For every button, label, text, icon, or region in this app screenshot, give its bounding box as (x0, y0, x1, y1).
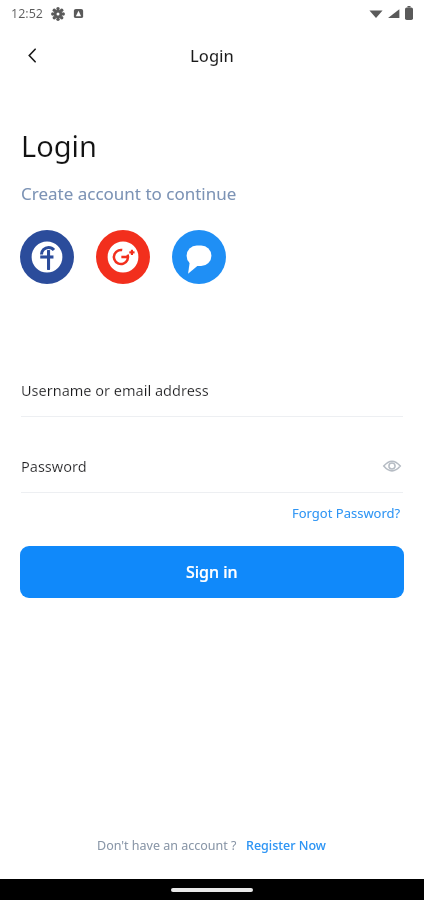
button[interactable]: Password (21, 455, 403, 477)
staticText: Forgot Password? (292, 504, 401, 522)
staticText: Login (21, 126, 97, 165)
staticText: 12:52 (11, 5, 43, 22)
button[interactable]: Sign in with Messenger (172, 230, 226, 284)
staticText: Password (21, 456, 87, 476)
button[interactable]: Sign in with Google Plus (96, 230, 150, 284)
button[interactable]: Sign in with Facebook (20, 230, 74, 284)
staticText: Login (190, 44, 234, 66)
button[interactable]: Sign in (20, 546, 404, 598)
button[interactable]: Register Now (244, 834, 328, 857)
button[interactable]: Forgot Password? (290, 501, 403, 525)
staticText: Don't have an account ? (97, 837, 237, 854)
button[interactable]: Back (12, 35, 52, 75)
staticText: Username or email address (21, 380, 209, 400)
button[interactable]: Username or email address (21, 380, 403, 400)
staticText: Sign in (186, 561, 238, 583)
staticText: Create account to continue (21, 182, 237, 205)
button[interactable]: Show password (381, 455, 403, 477)
staticText: Register Now (246, 837, 326, 854)
